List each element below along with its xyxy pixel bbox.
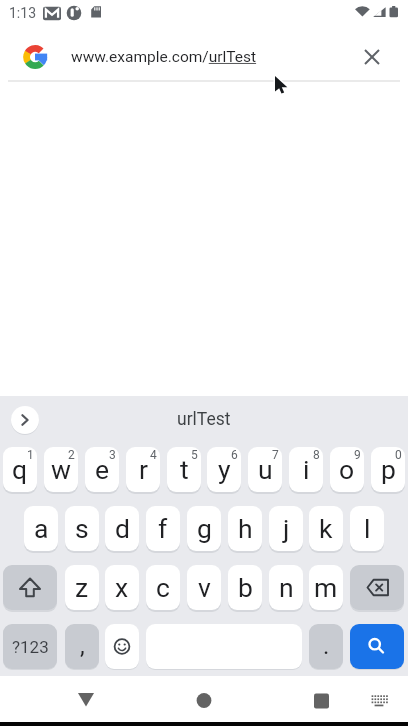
staticText: s [75,513,89,544]
staticText: p [381,454,396,485]
staticText: z [75,572,89,603]
button[interactable]: i [289,447,323,492]
button[interactable]: . [309,624,343,669]
button[interactable]: p [371,447,405,492]
button[interactable]: d [105,506,139,551]
staticText: q [12,454,28,485]
staticText: i [303,454,310,485]
button[interactable]: a [24,506,58,551]
button[interactable]: c [146,565,180,610]
button[interactable]: m [309,565,343,610]
staticText: www.example.com/urlTest [71,48,257,66]
button[interactable]: s [65,506,99,551]
button[interactable]: u [248,447,282,492]
button[interactable] [367,688,391,712]
button[interactable]: e [85,447,119,492]
staticText: 4 [150,448,157,462]
button[interactable]: , [65,624,99,669]
button[interactable]: h [228,506,262,551]
button[interactable]: z [65,565,99,610]
staticText: a [34,513,49,544]
button[interactable]: o [330,447,364,492]
staticText: n [279,572,294,603]
button[interactable]: l [350,506,384,551]
staticText: m [314,572,338,603]
staticText: 2 [68,448,75,462]
staticText: urlTest [177,409,231,430]
staticText: y [218,454,231,485]
button[interactable]: f [146,506,180,551]
button[interactable] [66,680,106,720]
button[interactable] [105,624,139,669]
button[interactable] [301,680,341,720]
staticText: j [283,513,290,544]
button[interactable] [184,680,224,720]
staticText: b [238,572,253,603]
staticText: . [323,632,330,660]
button[interactable]: q [3,447,37,492]
staticText: , [80,632,85,660]
staticText: 7 [272,448,279,462]
staticText: e [95,454,110,485]
button[interactable]: t [167,447,201,492]
staticText: r [139,454,148,485]
button[interactable] [358,43,386,71]
button[interactable]: g [187,506,221,551]
button[interactable]: ?123 [3,624,57,669]
staticText: w [51,454,71,485]
staticText: o [339,454,355,485]
staticText: 0 [395,448,402,462]
button[interactable] [350,565,404,610]
staticText: t [180,454,189,485]
staticText: c [156,572,170,603]
button[interactable] [3,565,57,610]
button[interactable]: b [228,565,262,610]
staticText: v [198,572,211,603]
staticText: l [364,513,371,544]
staticText: 9 [354,448,361,462]
staticText: h [238,513,253,544]
button[interactable] [350,624,404,669]
staticText: ?123 [12,637,49,657]
staticText: 6 [231,448,238,462]
button[interactable]: y [207,447,241,492]
staticText: f [158,513,168,544]
staticText: d [115,513,130,544]
button[interactable]: j [269,506,303,551]
staticText: 3 [109,448,116,462]
button[interactable]: k [309,506,343,551]
button[interactable]: n [269,565,303,610]
button[interactable]: v [187,565,221,610]
button[interactable]: r [126,447,160,492]
button[interactable] [11,406,39,434]
staticText: g [197,513,212,544]
staticText: 1 [27,448,34,462]
staticText: 1:13 [9,5,36,21]
staticText: 8 [313,448,320,462]
staticText: x [115,572,129,603]
staticText: 5 [191,448,198,462]
button[interactable]: w [44,447,78,492]
staticText: u [258,454,273,485]
staticText: k [319,513,333,544]
button[interactable]: x [105,565,139,610]
